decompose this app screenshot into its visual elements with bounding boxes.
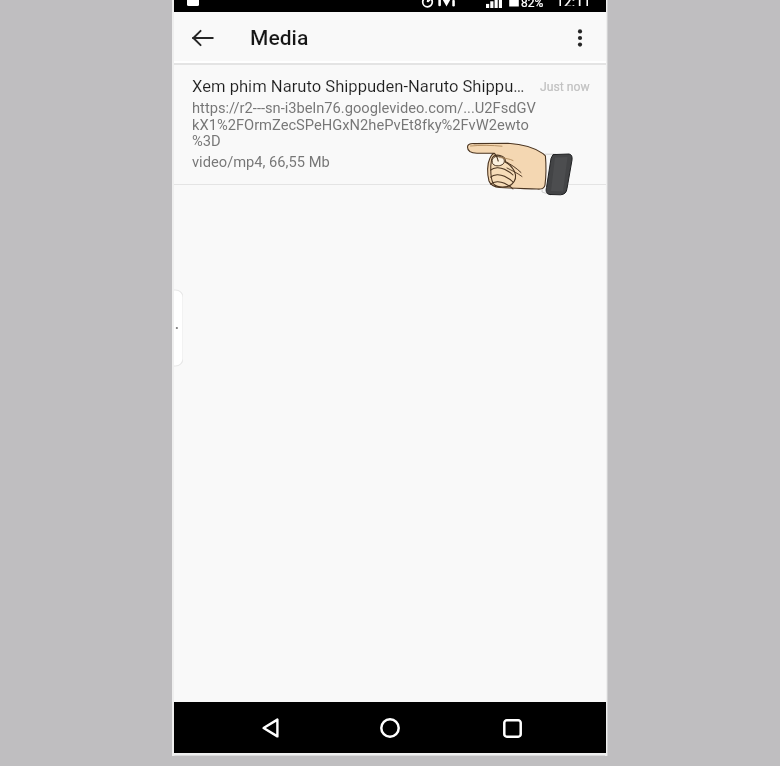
button[interactable]: Back [180, 15, 226, 61]
staticText: 82% [521, 0, 544, 8]
button[interactable]: Home [366, 704, 414, 752]
staticText: Xem phim Naruto Shippuden-Naruto Shippu… [192, 77, 525, 96]
staticText: Media [250, 26, 309, 51]
staticText: Just now [540, 80, 590, 94]
button[interactable]: Back [246, 704, 294, 752]
staticText: https://r2---sn-i3beln76.googlevideo.com… [192, 99, 536, 116]
staticText: %3D [192, 132, 221, 149]
button[interactable]: More options [558, 16, 602, 60]
button[interactable]: Xem phim Naruto Shippuden-Naruto Shippu… [174, 64, 606, 184]
staticText: 12:11 [556, 0, 591, 6]
button[interactable]: Recent apps [488, 704, 536, 752]
staticText: video/mp4, 66,55 Mb [192, 153, 330, 170]
staticText: kX1%2FOrmZecSPeHGxN2hePvEt8fky%2FvW2ewto [192, 116, 529, 133]
